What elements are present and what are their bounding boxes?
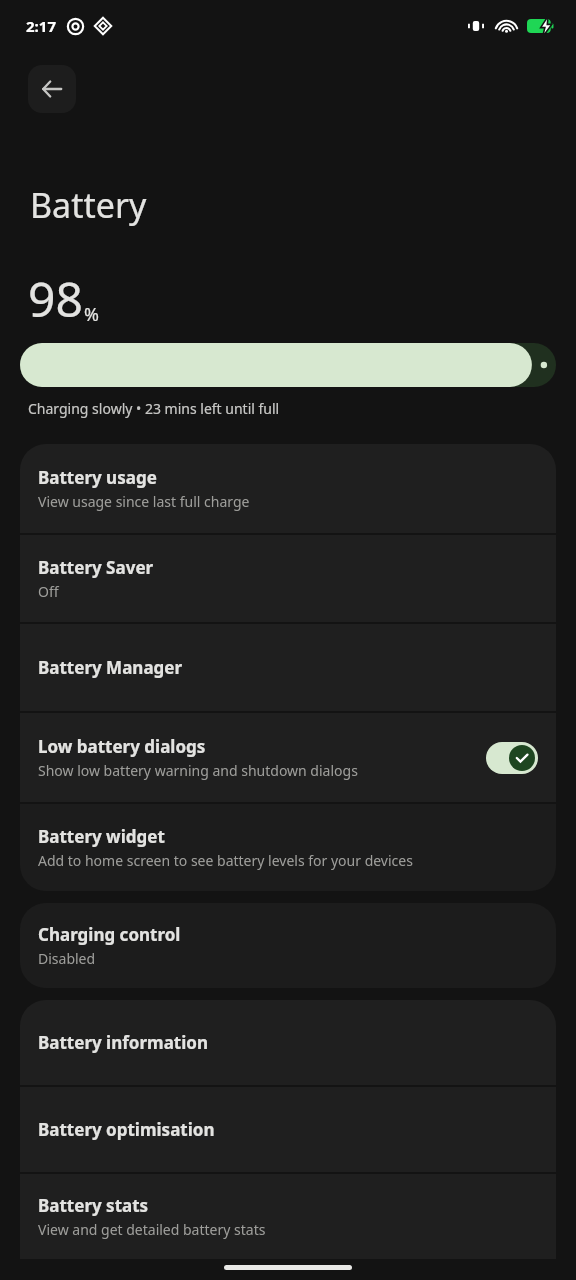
staticText: Battery optimisation bbox=[38, 1118, 215, 1141]
staticText: % bbox=[84, 302, 99, 327]
button[interactable]: Battery optimisation bbox=[20, 1087, 556, 1172]
staticText: Show low battery warning and shutdown di… bbox=[38, 761, 358, 780]
staticText: Battery Saver bbox=[38, 556, 154, 579]
button[interactable]: Battery Saver bbox=[20, 535, 556, 622]
staticText: 98 bbox=[28, 266, 83, 331]
button[interactable]: Battery Manager bbox=[20, 624, 556, 711]
button[interactable]: Low battery dialogs toggle bbox=[486, 742, 538, 774]
button[interactable]: Charging control bbox=[20, 903, 556, 988]
button[interactable]: Battery information bbox=[20, 1000, 556, 1085]
staticText: Disabled bbox=[38, 949, 96, 968]
staticText: Battery stats bbox=[38, 1194, 149, 1217]
staticText: View usage since last full charge bbox=[38, 492, 250, 511]
button[interactable]: Low battery dialogs bbox=[20, 713, 556, 802]
staticText: Charging control bbox=[38, 923, 181, 946]
button[interactable]: Back bbox=[28, 65, 76, 113]
staticText: Charging slowly • 23 mins left until ful… bbox=[28, 399, 280, 418]
staticText: View and get detailed battery stats bbox=[38, 1220, 266, 1239]
staticText: Battery bbox=[30, 182, 147, 228]
button[interactable]: Battery usage bbox=[20, 444, 556, 533]
staticText: Battery usage bbox=[38, 466, 157, 489]
staticText: Battery widget bbox=[38, 825, 165, 848]
button[interactable]: Battery widget bbox=[20, 804, 556, 891]
staticText: 2:17 bbox=[26, 16, 56, 36]
staticText: Battery information bbox=[38, 1031, 208, 1054]
staticText: Low battery dialogs bbox=[38, 735, 206, 758]
staticText: Off bbox=[38, 582, 59, 601]
staticText: Battery Manager bbox=[38, 656, 183, 679]
button[interactable]: Battery stats bbox=[20, 1174, 556, 1259]
staticText: Add to home screen to see battery levels… bbox=[38, 851, 413, 870]
